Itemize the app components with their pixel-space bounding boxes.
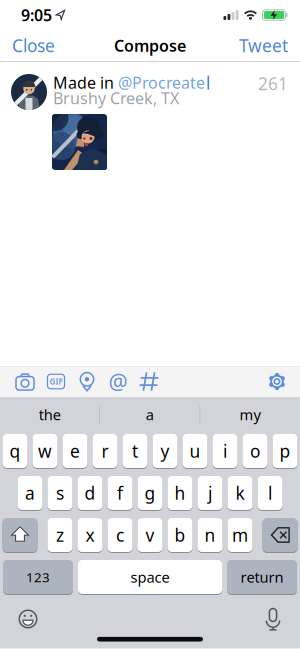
staticText: z — [56, 523, 64, 546]
button[interactable]: space — [78, 559, 222, 594]
staticText: 9:05 — [21, 4, 52, 26]
button[interactable]: q — [2, 433, 27, 468]
staticText: o — [250, 439, 260, 462]
staticText: Brushy Creek, TX — [53, 87, 179, 109]
staticText: r — [101, 439, 108, 462]
staticText: Close — [12, 34, 55, 57]
button[interactable]: return — [227, 559, 297, 594]
button[interactable]: z — [47, 517, 72, 552]
button[interactable]: y — [152, 433, 177, 468]
button[interactable]: d — [77, 475, 102, 510]
button[interactable]: a — [100, 397, 199, 432]
staticText: Made in — [53, 72, 118, 93]
button[interactable]: n — [197, 517, 222, 552]
button[interactable]: e — [62, 433, 87, 468]
button[interactable]: Delete — [262, 517, 297, 552]
staticText: q — [9, 439, 20, 462]
button[interactable]: Mention — [107, 370, 129, 392]
button[interactable]: p — [272, 433, 297, 468]
button[interactable]: h — [167, 475, 192, 510]
staticText: a — [146, 405, 154, 424]
button[interactable]: t — [122, 433, 147, 468]
staticText: d — [84, 481, 95, 504]
button[interactable]: k — [227, 475, 252, 510]
button[interactable]: 123 — [3, 559, 73, 594]
button[interactable]: Shift — [2, 517, 37, 552]
staticText: p — [279, 439, 290, 462]
staticText: w — [38, 439, 52, 462]
button[interactable]: Attached image — [52, 114, 107, 170]
staticText: return — [240, 567, 283, 587]
staticText: v — [145, 523, 154, 546]
button[interactable]: l — [257, 475, 282, 510]
staticText: g — [144, 481, 155, 504]
staticText: Compose — [114, 35, 186, 56]
button[interactable]: g — [137, 475, 162, 510]
staticText: e — [70, 439, 80, 462]
staticText: @Procreate — [118, 72, 205, 93]
staticText: k — [235, 481, 244, 504]
staticText: l — [268, 481, 272, 504]
button[interactable]: the — [0, 397, 99, 432]
staticText: n — [204, 523, 215, 546]
staticText: the — [39, 405, 61, 424]
staticText: x — [85, 523, 94, 546]
button[interactable]: r — [92, 433, 117, 468]
button[interactable]: Account avatar — [11, 74, 47, 110]
button[interactable]: GIF — [45, 370, 67, 392]
button[interactable]: Hashtag — [138, 370, 160, 392]
button[interactable]: b — [167, 517, 192, 552]
staticText: s — [56, 481, 64, 504]
button[interactable]: m — [227, 517, 252, 552]
staticText: t — [132, 439, 138, 462]
staticText: space — [130, 567, 169, 587]
staticText: a — [25, 481, 35, 504]
staticText: j — [208, 481, 212, 504]
staticText: my — [240, 405, 261, 424]
button[interactable]: u — [182, 433, 207, 468]
staticText: 261 — [258, 72, 288, 95]
button[interactable]: Tweet — [239, 34, 300, 57]
staticText: u — [189, 439, 200, 462]
staticText: 123 — [26, 568, 50, 586]
staticText: h — [174, 481, 185, 504]
button[interactable]: i — [212, 433, 237, 468]
button[interactable]: f — [107, 475, 132, 510]
staticText: b — [174, 523, 185, 546]
staticText: Tweet — [239, 34, 288, 57]
button[interactable]: x — [77, 517, 102, 552]
button[interactable]: Emoji — [18, 609, 38, 629]
button[interactable]: o — [242, 433, 267, 468]
button[interactable]: Settings — [266, 370, 288, 392]
button[interactable]: c — [107, 517, 132, 552]
button[interactable]: j — [197, 475, 222, 510]
staticText: c — [116, 523, 124, 546]
button[interactable]: a — [17, 475, 42, 510]
staticText: GIF — [49, 376, 62, 387]
button[interactable]: w — [32, 433, 57, 468]
button[interactable]: s — [47, 475, 72, 510]
button[interactable]: v — [137, 517, 162, 552]
button[interactable]: Location — [76, 370, 98, 392]
staticText: f — [117, 481, 123, 504]
button[interactable]: Dictation — [263, 608, 283, 630]
staticText: i — [223, 439, 227, 462]
staticText: @ — [108, 367, 127, 396]
button[interactable]: Camera — [14, 370, 36, 392]
button[interactable]: my — [200, 397, 300, 432]
button[interactable]: Close — [0, 34, 55, 57]
staticText: y — [160, 439, 169, 462]
staticText: m — [232, 523, 248, 546]
